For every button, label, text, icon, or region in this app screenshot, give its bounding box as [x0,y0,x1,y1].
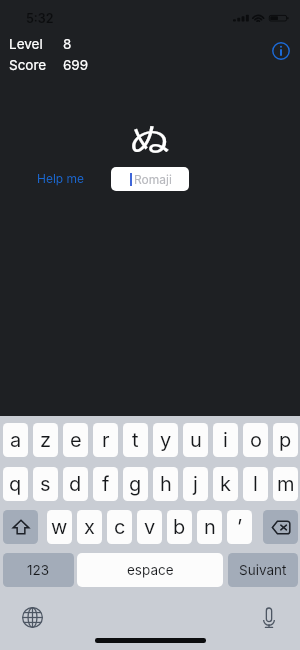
staticText: s [40,472,51,496]
button[interactable]: t [123,423,148,457]
button[interactable]: Help me [37,171,85,186]
staticText: i [223,428,228,452]
button[interactable]: q [3,467,28,501]
button[interactable]: a [3,423,28,457]
button[interactable]: 123 [3,553,74,587]
button[interactable]: h [153,467,178,501]
button[interactable]: g [123,467,148,501]
staticText: j [193,472,198,496]
button[interactable]: espace [77,553,223,587]
button[interactable]: k [213,467,238,501]
button[interactable]: i [213,423,238,457]
staticText: g [129,472,142,496]
staticText: b [173,515,186,539]
staticText: l [253,472,258,496]
button[interactable]: j [183,467,208,501]
staticText: Level [9,36,43,52]
staticText: z [40,428,52,452]
staticText: q [9,472,22,496]
staticText: k [220,472,231,496]
staticText: h [160,472,172,496]
staticText: e [70,428,82,452]
button[interactable]: y [153,423,178,457]
button[interactable]: Info [272,42,290,60]
button[interactable]: d [63,467,88,501]
staticText: w [51,515,68,539]
staticText: v [144,515,156,539]
staticText: x [84,515,95,539]
staticText: 8 [63,36,72,52]
staticText: Romaji [134,172,172,187]
staticText: o [250,428,262,452]
staticText: u [190,428,202,452]
button[interactable]: z [33,423,58,457]
button[interactable]: o [243,423,268,457]
staticText: Help me [37,171,85,186]
staticText: a [10,428,22,452]
staticText: r [102,428,110,452]
button[interactable]: w [47,510,72,544]
button[interactable]: Romaji [111,167,189,191]
staticText: espace [127,562,174,578]
button[interactable]: p [273,423,298,457]
button[interactable]: s [33,467,58,501]
button[interactable]: Dictation [263,608,275,628]
staticText: n [204,515,216,539]
staticText: m [277,472,295,496]
button[interactable]: Suivant [228,553,298,587]
button[interactable]: Backspace [263,510,298,544]
staticText: c [114,515,126,539]
button[interactable]: Shift [3,510,38,544]
staticText: y [160,428,172,452]
staticText: Score [9,57,47,73]
staticText: Suivant [239,562,287,578]
staticText: 699 [63,57,89,73]
button[interactable]: c [107,510,132,544]
staticText: 123 [27,562,50,578]
button[interactable]: m [273,467,298,501]
button[interactable]: l [243,467,268,501]
staticText: p [279,428,292,452]
button[interactable]: u [183,423,208,457]
staticText: t [132,428,139,452]
staticText: ’ [237,515,243,539]
staticText: f [102,472,110,496]
button[interactable]: n [197,510,222,544]
button[interactable]: Change keyboard [22,607,43,628]
staticText: 5:32 [26,11,54,26]
button[interactable]: r [93,423,118,457]
button[interactable]: x [77,510,102,544]
button[interactable]: f [93,467,118,501]
button[interactable]: ’ [227,510,252,544]
staticText: d [69,472,82,496]
staticText: ぬ [129,123,171,157]
button[interactable]: v [137,510,162,544]
button[interactable]: b [167,510,192,544]
button[interactable]: e [63,423,88,457]
